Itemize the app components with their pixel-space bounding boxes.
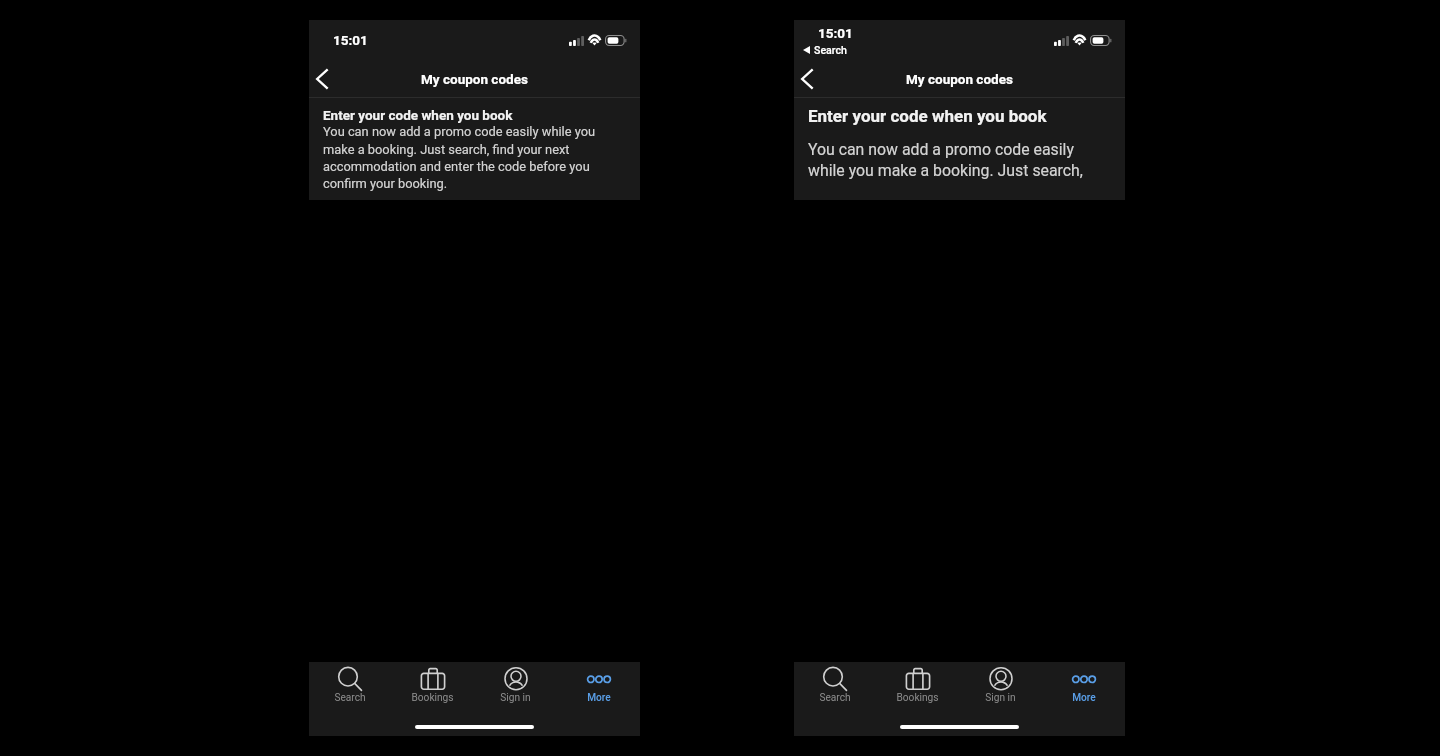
button[interactable]: More bbox=[557, 662, 640, 704]
button[interactable]: Bookings bbox=[391, 662, 474, 704]
staticText: Enter your code when you book bbox=[808, 106, 1047, 126]
button[interactable]: Search bbox=[803, 44, 847, 56]
staticText: 15:01 bbox=[333, 32, 368, 48]
staticText: Sign in bbox=[985, 692, 1016, 704]
staticText: More bbox=[1072, 692, 1096, 704]
staticText: Search bbox=[814, 44, 847, 56]
staticText: Bookings bbox=[896, 692, 939, 704]
staticText: Bookings bbox=[411, 692, 454, 704]
staticText: More bbox=[587, 692, 611, 704]
button[interactable]: Sign in bbox=[959, 662, 1042, 704]
staticText: Enter your code when you book bbox=[323, 107, 513, 123]
button[interactable]: Search bbox=[794, 662, 876, 704]
button[interactable]: More bbox=[1042, 662, 1125, 704]
staticText: My coupon codes bbox=[421, 71, 528, 87]
staticText: My coupon codes bbox=[906, 71, 1013, 87]
staticText: Search bbox=[819, 692, 851, 704]
staticText: Search bbox=[334, 692, 366, 704]
button[interactable]: Sign in bbox=[474, 662, 557, 704]
staticText: Sign in bbox=[500, 692, 531, 704]
button[interactable]: Search bbox=[309, 662, 391, 704]
button[interactable]: Back bbox=[794, 60, 823, 97]
staticText: You can now add a promo code easily whil… bbox=[323, 124, 617, 191]
staticText: You can now add a promo code easily whil… bbox=[808, 140, 1113, 180]
staticText: 15:01 bbox=[818, 25, 853, 41]
button[interactable]: Bookings bbox=[876, 662, 959, 704]
button[interactable]: Back bbox=[309, 60, 338, 97]
